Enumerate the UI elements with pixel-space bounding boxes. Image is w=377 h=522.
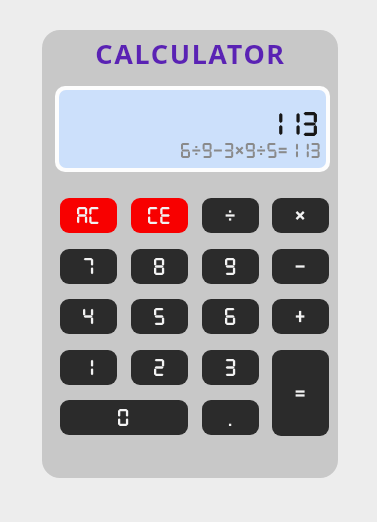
button[interactable] (202, 299, 259, 334)
button[interactable] (60, 198, 117, 233)
button[interactable] (272, 249, 329, 284)
button[interactable] (131, 249, 188, 284)
button[interactable] (60, 249, 117, 284)
button[interactable] (202, 400, 259, 435)
button[interactable] (60, 400, 188, 435)
button[interactable] (202, 350, 259, 385)
button[interactable] (60, 299, 117, 334)
button[interactable] (131, 350, 188, 385)
button[interactable] (60, 350, 117, 385)
button[interactable] (131, 299, 188, 334)
button[interactable] (131, 198, 188, 233)
button[interactable] (272, 299, 329, 334)
button[interactable] (272, 198, 329, 233)
button[interactable] (202, 249, 259, 284)
button[interactable] (272, 350, 329, 436)
staticText: CALCULATOR (95, 35, 286, 72)
button[interactable] (202, 198, 259, 233)
